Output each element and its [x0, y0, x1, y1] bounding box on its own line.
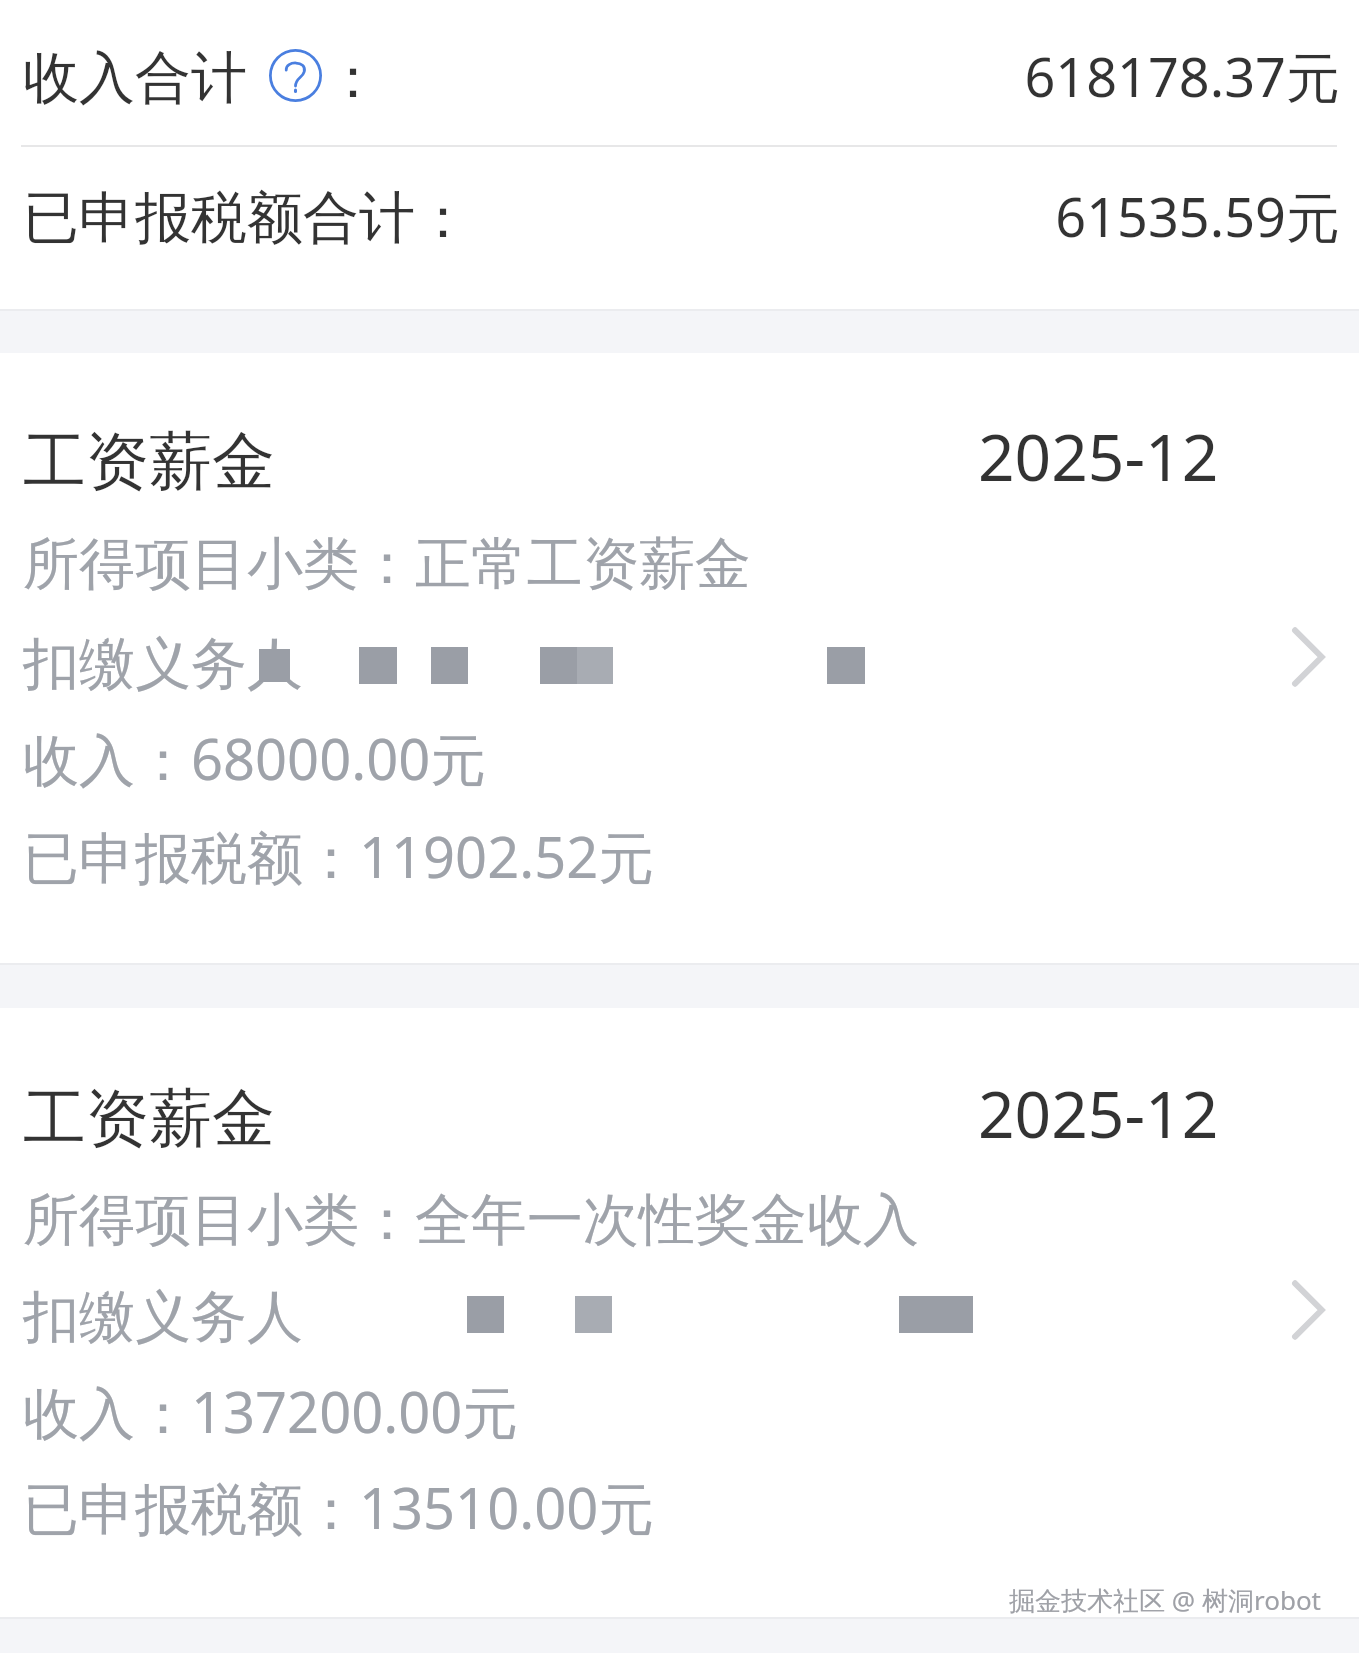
staticText: 2025-12 — [978, 413, 1219, 500]
staticText: 已申报税额：13510.00元 — [23, 1469, 655, 1545]
staticText: 工资薪金 — [23, 422, 275, 501]
staticText: 掘金技术社区 @ 树洞robot — [0, 1582, 1321, 1618]
staticText: 扣缴义务人 — [23, 629, 303, 700]
staticText: 所得项目小类：全年一次性奖金收入 — [23, 1185, 919, 1256]
staticText: 工资薪金 — [23, 1079, 275, 1158]
staticText: 2025-12 — [978, 1070, 1219, 1157]
button[interactable]: 查看明细 — [1290, 627, 1326, 687]
button[interactable]: 查看明细 — [1290, 1280, 1326, 1340]
button[interactable]: 工资薪金 — [0, 353, 1359, 963]
button[interactable]: 收入合计说明 — [269, 49, 322, 102]
staticText: 收入：137200.00元 — [23, 1373, 519, 1449]
staticText: 所得项目小类：正常工资薪金 — [23, 529, 751, 600]
staticText: 收入合计 — [23, 43, 247, 114]
button[interactable]: 收入合计 — [0, 0, 1359, 145]
button[interactable]: 工资薪金 — [0, 1008, 1359, 1617]
staticText: 扣缴义务人 — [23, 1282, 303, 1353]
staticText: 已申报税额合计： — [23, 183, 471, 254]
button[interactable]: 已申报税额合计： — [0, 147, 1359, 309]
staticText: 收入：68000.00元 — [23, 720, 487, 796]
staticText: 618178.37元 — [0, 39, 1340, 113]
staticText: 已申报税额：11902.52元 — [23, 818, 655, 894]
staticText: ： — [325, 43, 381, 114]
staticText: 61535.59元 — [0, 179, 1340, 253]
